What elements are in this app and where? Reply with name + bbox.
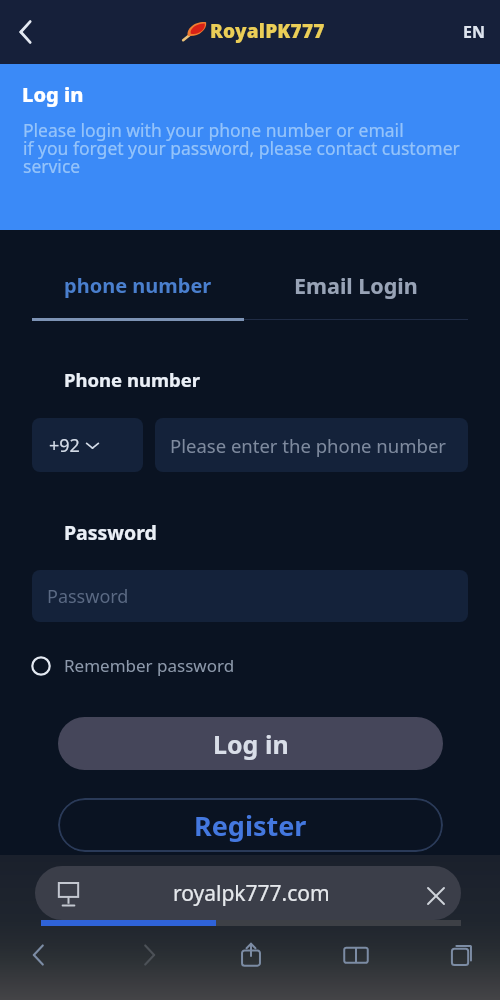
button[interactable]: Back bbox=[14, 929, 66, 981]
staticText: +92 bbox=[49, 433, 80, 458]
button[interactable]: Register bbox=[58, 798, 443, 852]
staticText: Log in bbox=[213, 727, 289, 761]
button[interactable]: Password bbox=[32, 570, 468, 622]
button[interactable]: Remember password bbox=[31, 654, 235, 677]
button[interactable]: Bookmarks bbox=[330, 929, 382, 981]
button[interactable]: Log in bbox=[58, 717, 443, 770]
button[interactable]: EN bbox=[452, 10, 496, 54]
staticText: Remember password bbox=[64, 654, 235, 677]
staticText: EN bbox=[463, 21, 485, 43]
staticText: royalpk777.com bbox=[173, 879, 330, 908]
staticText: Email Login bbox=[294, 271, 418, 300]
button[interactable]: Close tab bbox=[417, 877, 455, 915]
staticText: Log in bbox=[22, 81, 84, 108]
staticText: phone number bbox=[64, 272, 212, 299]
button[interactable]: Share bbox=[225, 929, 277, 981]
staticText: Please login with your phone number or e… bbox=[23, 118, 460, 178]
staticText: RoyalPK777 bbox=[210, 18, 325, 44]
button[interactable]: Forward bbox=[122, 929, 174, 981]
staticText: Register bbox=[194, 807, 307, 844]
button[interactable]: Email Login bbox=[244, 270, 468, 300]
staticText: Please enter the phone number bbox=[170, 433, 446, 458]
staticText: Phone number bbox=[64, 367, 201, 392]
button[interactable]: Tabs bbox=[436, 929, 488, 981]
button[interactable]: royalpk777.com bbox=[35, 866, 461, 920]
button[interactable]: phone number bbox=[32, 270, 244, 300]
staticText: Password bbox=[47, 584, 129, 609]
staticText: Password bbox=[64, 519, 157, 546]
button[interactable]: Back bbox=[2, 8, 50, 56]
button[interactable]: +92 bbox=[32, 418, 143, 472]
button[interactable]: Please enter the phone number bbox=[155, 418, 468, 472]
